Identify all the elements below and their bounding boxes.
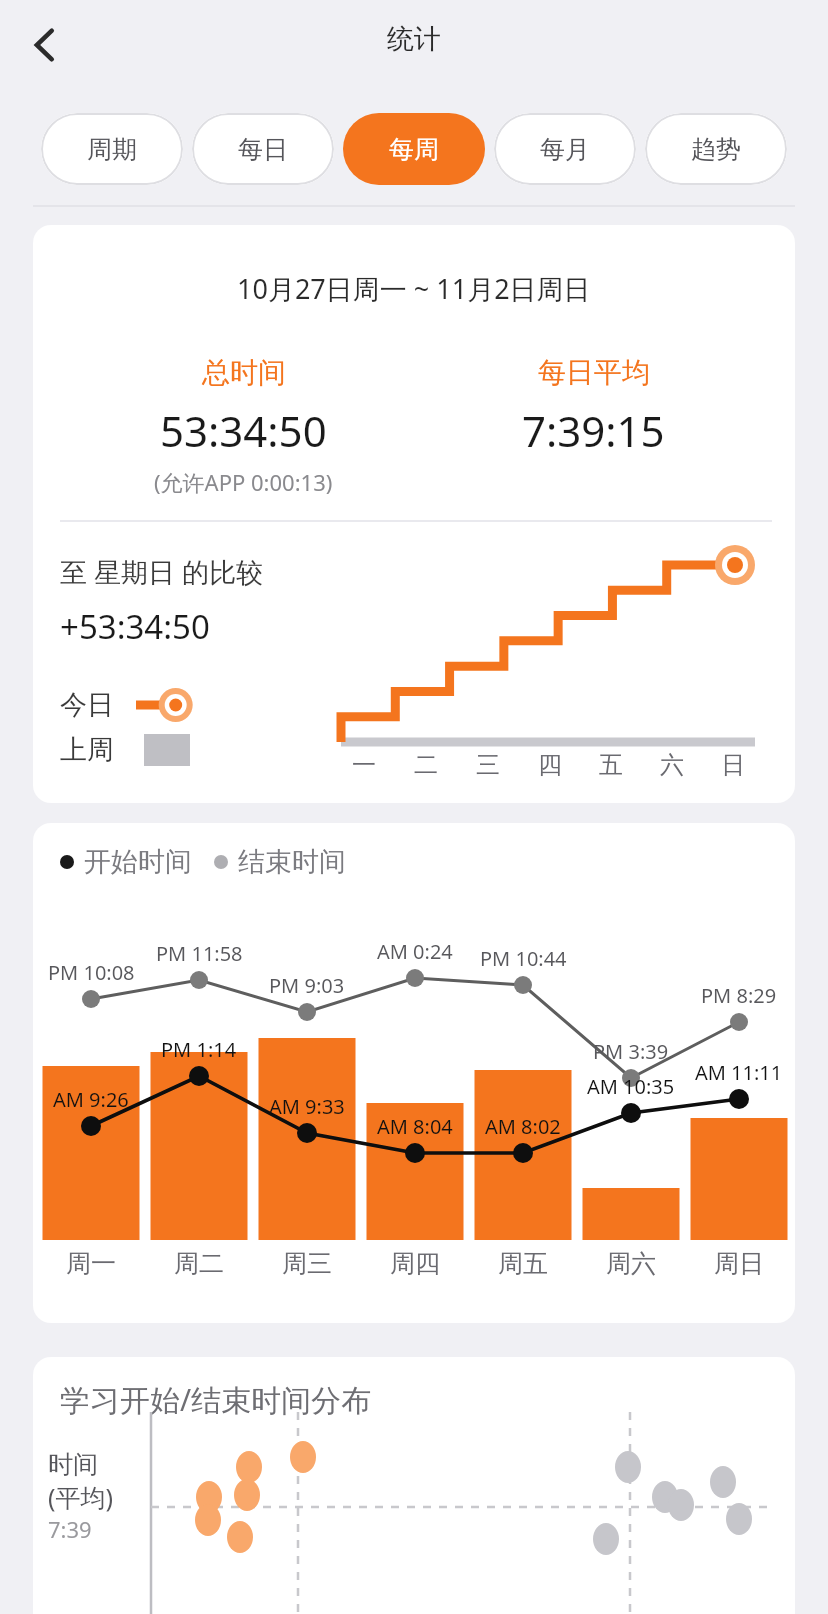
staticText: 统计 — [387, 22, 441, 56]
button[interactable]: 每日 — [192, 113, 334, 185]
staticText: 每周 — [389, 134, 439, 165]
staticText: PM 11:58 — [156, 940, 243, 967]
staticText: 日 — [721, 750, 745, 780]
staticText: AM 8:04 — [377, 1113, 453, 1140]
staticText: +53:34:50 — [60, 604, 210, 649]
staticText: 周五 — [498, 1248, 548, 1279]
staticText: AM 8:02 — [485, 1113, 561, 1140]
staticText: 周三 — [282, 1248, 332, 1279]
staticText: 7:39 — [48, 1514, 92, 1544]
staticText: 每日 — [238, 134, 288, 165]
staticText: PM 1:14 — [161, 1036, 237, 1063]
staticText: 开始时间 — [84, 845, 192, 879]
staticText: AM 9:26 — [53, 1086, 129, 1113]
staticText: 10月27日周一 ~ 11月2日周日 — [237, 270, 591, 307]
staticText: 今日 — [60, 688, 114, 722]
staticText: 上周 — [60, 733, 114, 767]
button[interactable]: 每月 — [494, 113, 636, 185]
staticText: 一 — [352, 750, 376, 780]
staticText: 学习开始/结束时间分布 — [60, 1379, 372, 1420]
staticText: 二 — [414, 750, 438, 780]
staticText: 周二 — [174, 1248, 224, 1279]
staticText: 趋势 — [691, 134, 741, 165]
staticText: 53:34:50 — [160, 402, 327, 459]
staticText: 四 — [538, 750, 562, 780]
staticText: 总时间 — [202, 355, 286, 390]
staticText: 六 — [660, 750, 684, 780]
staticText: AM 10:35 — [587, 1073, 675, 1100]
button[interactable]: 每周 — [343, 113, 485, 185]
staticText: 7:39:15 — [522, 402, 665, 459]
staticText: PM 10:08 — [48, 959, 135, 986]
button[interactable]: Back — [14, 14, 76, 76]
staticText: 周期 — [87, 134, 137, 165]
staticText: (允许APP 0:00:13) — [154, 467, 333, 497]
staticText: 每日平均 — [538, 355, 650, 390]
staticText: 时间 — [48, 1449, 98, 1480]
staticText: 周四 — [390, 1248, 440, 1279]
staticText: AM 11:11 — [695, 1059, 783, 1086]
staticText: AM 0:24 — [377, 938, 453, 965]
staticText: 至 星期日 的比较 — [60, 553, 264, 590]
staticText: PM 9:03 — [269, 972, 345, 999]
staticText: 周一 — [66, 1248, 116, 1279]
staticText: 五 — [599, 750, 623, 780]
staticText: 周日 — [714, 1248, 764, 1279]
staticText: 结束时间 — [238, 845, 346, 879]
staticText: PM 8:29 — [701, 982, 777, 1009]
staticText: 三 — [476, 750, 500, 780]
staticText: 周六 — [606, 1248, 656, 1279]
staticText: PM 10:44 — [480, 945, 567, 972]
staticText: 每月 — [540, 134, 590, 165]
button[interactable]: 周期 — [41, 113, 183, 185]
staticText: (平均) — [48, 1480, 114, 1514]
staticText: AM 9:33 — [269, 1093, 345, 1120]
staticText: PM 3:39 — [593, 1038, 669, 1065]
button[interactable]: 趋势 — [645, 113, 787, 185]
